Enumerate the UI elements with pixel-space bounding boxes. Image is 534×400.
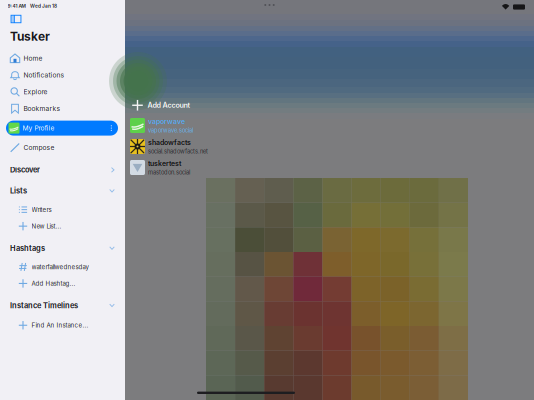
button[interactable]: waterfallwednesday [0,259,125,275]
button[interactable]: Hide Sidebar [0,12,125,26]
staticText: Add Hashtag... [31,280,75,287]
staticText: Explore [23,88,47,96]
button[interactable]: Discover [0,159,125,180]
button[interactable]: New List... [0,218,125,234]
staticText: Wed Jan 18 [30,3,57,9]
button[interactable]: My Profile [0,117,125,139]
staticText: Instance Timelines [10,301,78,310]
staticText: New List... [31,222,61,230]
staticText: vaporwave.social [148,127,193,134]
staticText: Tusker [10,29,50,44]
staticText: 9:41 AM [7,3,25,9]
staticText: Find An Instance... [31,321,88,329]
button[interactable]: Instance Timelines [0,295,125,316]
staticText: social.shadowfacts.net [148,148,208,155]
button[interactable]: Lists [0,180,125,201]
staticText: My Profile [22,124,54,132]
staticText: Notifications [23,71,64,79]
staticText: tuskertest [148,159,181,168]
staticText: Discover [10,165,40,174]
staticText: Lists [10,186,27,195]
button[interactable]: Find An Instance... [0,317,125,333]
button[interactable]: Explore [0,83,125,100]
button[interactable]: shadowfacts [126,136,246,157]
button[interactable]: Writers [0,201,125,218]
staticText: mastodon.social [148,169,190,176]
button[interactable]: Home [0,50,125,67]
button[interactable]: Add Hashtag... [0,275,125,292]
staticText: vaporwave [148,117,185,126]
button[interactable]: Hashtags [0,238,125,259]
staticText: Add Account [147,101,190,110]
button[interactable]: Notifications [0,67,125,83]
staticText: Hashtags [10,244,45,253]
button[interactable]: Bookmarks [0,100,125,117]
staticText: Bookmarks [23,105,60,113]
button[interactable]: Compose [0,139,125,156]
staticText: Compose [23,144,54,152]
button[interactable]: Add Account [126,95,246,115]
staticText: waterfallwednesday [31,263,88,271]
button[interactable]: tuskertest [126,157,246,178]
button[interactable]: vaporwave [126,115,246,136]
staticText: Writers [31,206,51,213]
staticText: Home [23,54,42,62]
staticText: shadowfacts [148,138,191,147]
